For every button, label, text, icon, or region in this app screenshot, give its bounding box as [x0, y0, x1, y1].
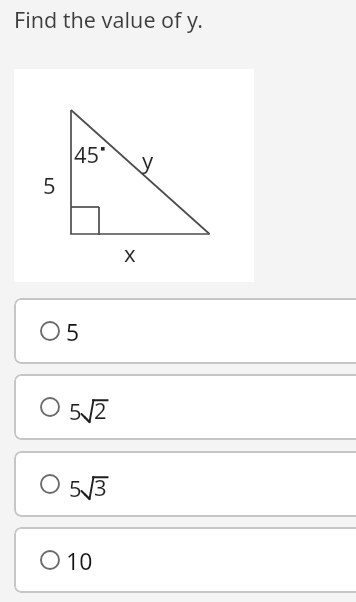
button[interactable]: Answer option 5 [14, 298, 356, 364]
button[interactable]: Answer option 10 [14, 527, 356, 593]
staticText: 45 [74, 139, 100, 169]
staticText: y [142, 145, 154, 175]
staticText: 3 [94, 472, 107, 500]
staticText: 5 [43, 170, 56, 200]
button[interactable]: Answer option 5 root 2 [14, 374, 356, 440]
staticText: Find the value of y. [14, 5, 203, 34]
staticText: x [124, 238, 136, 268]
staticText: 10 [66, 545, 93, 576]
staticText: 2 [94, 395, 107, 423]
staticText: 5 [69, 473, 82, 501]
button[interactable]: Answer option 5 root 3 [14, 451, 356, 517]
other: Diagram: right triangle with a 45 degree… [14, 69, 254, 282]
staticText: 5 [69, 396, 82, 424]
staticText: 5 [66, 316, 80, 347]
